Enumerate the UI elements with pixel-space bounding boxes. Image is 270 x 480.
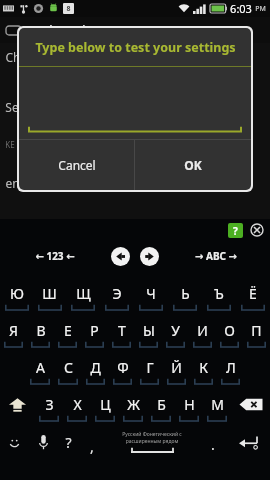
staticText: ? [233,224,238,238]
button[interactable]: . [200,423,225,461]
button[interactable]: Русский Фонетический с расширенным рядом [104,423,200,461]
button[interactable]: ? [57,423,79,461]
button[interactable]: М [203,386,231,423]
button[interactable]: Close keyboard [249,222,265,238]
button[interactable]: И [189,312,216,349]
staticText: Ь [181,284,190,303]
button[interactable]: Emoji [0,423,29,461]
button[interactable]: Voice input [29,423,57,461]
button[interactable]: У [162,312,189,349]
staticText: OK [184,157,202,173]
staticText: Й [171,358,182,377]
staticText: З [45,395,54,414]
staticText: Л [226,358,236,377]
button[interactable]: → ABC → [177,241,254,271]
staticText: Ш [42,284,57,303]
button[interactable]: З [35,386,63,423]
button[interactable]: Move right [140,247,159,266]
staticText: А [36,358,45,377]
staticText: ← 123 ← [35,249,75,263]
staticText: Ё [249,284,257,303]
button[interactable]: П [243,312,270,349]
staticText: Ch [5,49,21,65]
button[interactable]: ← 123 ← [16,241,93,271]
staticText: en [5,175,20,189]
staticText: К [199,358,208,377]
staticText: Ц [100,395,111,414]
button[interactable]: Cancel [19,140,134,190]
staticText: . [211,435,215,454]
staticText: М [211,395,224,414]
staticText: Я [9,321,18,340]
staticText: С [64,358,73,377]
button[interactable]: Ь [168,275,202,312]
staticText: Type below to test your settings [35,39,236,56]
button[interactable]: Ф [109,349,136,386]
staticText: ? [65,433,72,452]
staticText: Э [112,284,122,303]
button[interactable]: Help [228,223,243,238]
staticText: Т [118,321,126,340]
button[interactable]: С [54,349,82,386]
button[interactable]: Ю [0,275,33,312]
staticText: Д [90,358,101,377]
button[interactable]: Ч [134,275,168,312]
staticText: И [197,321,208,340]
button[interactable]: , [79,423,104,461]
staticText: KE [5,139,15,149]
button[interactable]: Enter [225,423,270,461]
button[interactable]: Б [147,386,175,423]
button[interactable]: Э [100,275,134,312]
button[interactable]: Ъ [202,275,236,312]
staticText: Русский Фонетический с расширенным рядом [104,431,200,445]
staticText: В [36,321,46,340]
staticText: Ж [127,395,140,414]
button[interactable]: Ё [236,275,270,312]
button[interactable]: Backspace [231,386,270,423]
button[interactable]: Х [63,386,91,423]
button[interactable]: OK [135,140,251,190]
staticText: Ч [146,284,156,303]
staticText: О [224,321,235,340]
button[interactable]: Ц [91,386,119,423]
button[interactable]: Ы [135,312,162,349]
staticText: Х [73,395,82,414]
staticText: Ф [117,358,129,377]
staticText: , [90,437,94,456]
staticText: Ъ [214,284,224,303]
staticText: Н [184,395,195,414]
button[interactable]: Ж [119,386,147,423]
button[interactable]: К [190,349,217,386]
staticText: Se [5,99,19,115]
staticText: 6:03 [230,1,252,16]
button[interactable]: А [26,349,54,386]
staticText: Ю [10,284,24,303]
staticText: П [251,321,262,340]
button[interactable]: Ш [33,275,66,312]
staticText: Keyboards [27,21,92,39]
staticText: У [171,321,180,340]
button[interactable]: Е [54,312,81,349]
button[interactable]: Move left [111,247,130,266]
button[interactable]: Д [82,349,109,386]
button[interactable]: Р [81,312,108,349]
button[interactable]: Л [217,349,244,386]
staticText: 8 [66,4,71,14]
button[interactable]: Й [163,349,190,386]
staticText: Р [90,321,99,340]
button[interactable]: Т [108,312,135,349]
staticText: Ы [143,321,155,340]
button[interactable]: Щ [66,275,100,312]
button[interactable]: В [27,312,54,349]
staticText: PM [255,4,266,14]
button[interactable]: Н [175,386,203,423]
button[interactable]: Shift [0,386,35,423]
button[interactable]: Г [136,349,163,386]
staticText: Е [64,321,72,340]
staticText: Щ [76,284,91,303]
button[interactable]: Я [0,312,27,349]
staticText: Cancel [58,157,96,173]
staticText: Б [157,395,166,414]
button[interactable]: О [216,312,243,349]
staticText: Г [146,358,154,377]
